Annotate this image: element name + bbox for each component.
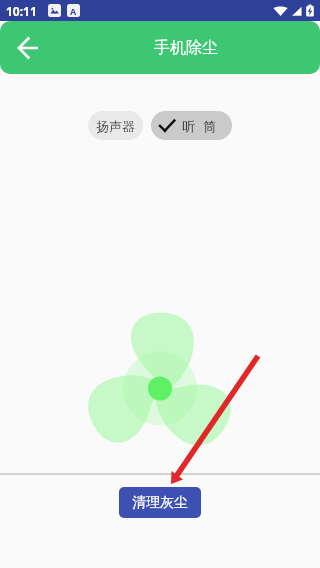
button[interactable]: 清理灰尘	[119, 487, 201, 518]
staticText: 清理灰尘	[132, 494, 188, 512]
button[interactable]: 听 筒	[151, 111, 232, 140]
staticText: 手机除尘	[154, 38, 218, 58]
staticText: 听 筒	[182, 117, 217, 135]
staticText: A	[70, 5, 77, 17]
staticText: 扬声器	[96, 118, 135, 134]
button[interactable]: 扬声器	[88, 111, 143, 140]
staticText: 10:11	[6, 3, 37, 19]
button[interactable]: Back	[10, 30, 46, 66]
